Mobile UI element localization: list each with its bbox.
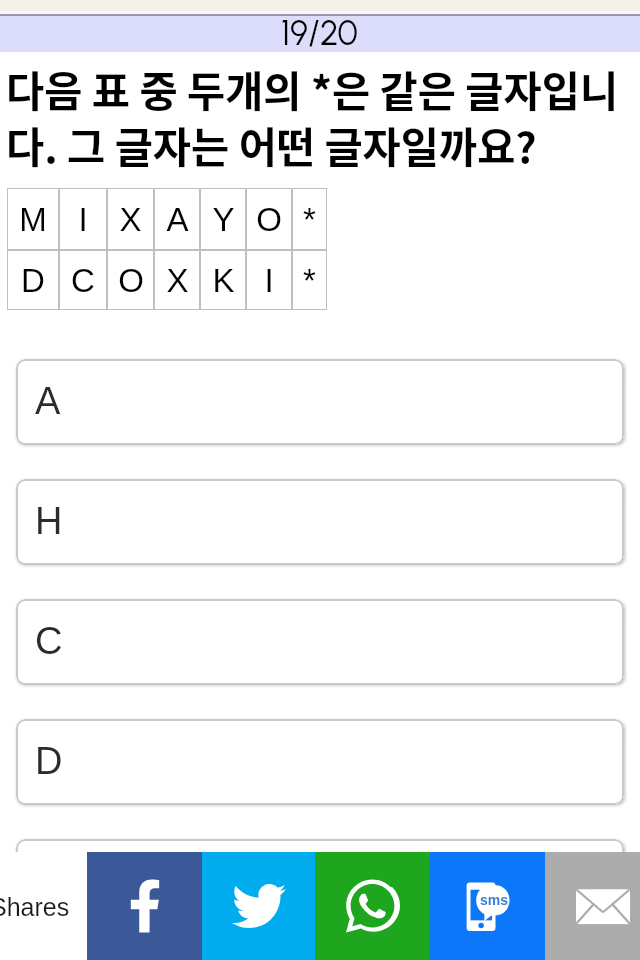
staticText: I	[78, 201, 88, 238]
staticText: Shares	[0, 893, 70, 921]
staticText: O	[256, 201, 282, 238]
button[interactable]: H	[16, 479, 624, 565]
staticText: A	[35, 380, 61, 422]
button[interactable]: E	[16, 839, 624, 925]
staticText: X	[166, 262, 189, 299]
button[interactable]: Share on WhatsApp	[315, 852, 430, 960]
staticText: K	[212, 262, 235, 299]
button[interactable]: Share on Facebook	[87, 852, 202, 960]
staticText: M	[19, 201, 47, 238]
staticText: *	[303, 201, 316, 238]
staticText: C	[35, 620, 63, 662]
staticText: Y	[212, 201, 235, 238]
button[interactable]: Share via SMS	[430, 852, 545, 960]
button[interactable]: Share via Email	[545, 852, 640, 960]
staticText: 19/20	[281, 13, 358, 49]
staticText: D	[21, 262, 45, 299]
staticText: 다음 표 중 두개의 *은 같은 글자입니다. 그 글자는 어떤 글자일까요?	[6, 59, 638, 175]
staticText: A	[166, 201, 189, 238]
button[interactable]: D	[16, 719, 624, 805]
staticText: H	[35, 500, 63, 542]
staticText: sms	[480, 892, 509, 908]
button[interactable]: Shares	[0, 852, 87, 960]
staticText: X	[119, 201, 142, 238]
button[interactable]: Share on Twitter	[202, 852, 315, 960]
button[interactable]: A	[16, 359, 624, 445]
staticText: O	[118, 262, 144, 299]
staticText: I	[264, 262, 274, 299]
staticText: *	[303, 262, 316, 299]
button[interactable]: C	[16, 599, 624, 685]
staticText: D	[35, 740, 63, 782]
staticText: C	[71, 262, 95, 299]
